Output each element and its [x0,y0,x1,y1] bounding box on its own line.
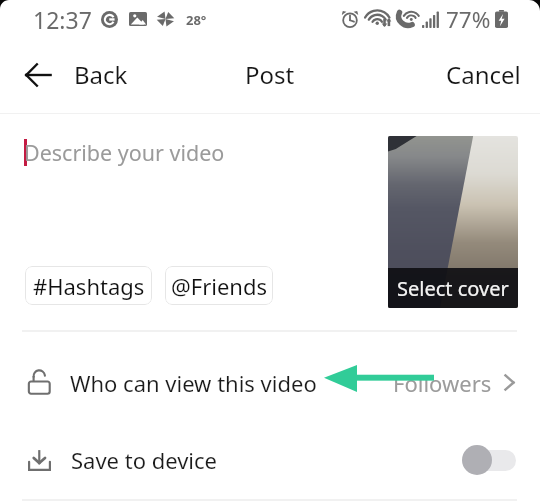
other: annotation arrow [324,365,434,392]
button[interactable]: #Hashtags [25,266,152,305]
staticText: 77% [446,4,491,35]
button[interactable]: Select cover [388,136,518,308]
staticText: Select cover [397,275,509,302]
staticText: @Friends [171,271,268,301]
button[interactable]: Cancel [410,40,540,109]
button[interactable]: Who can view this video [0,331,540,434]
staticText: Cancel [446,58,521,91]
button[interactable]: Save to device [0,428,540,492]
staticText: 28° [186,11,207,29]
staticText: 12:37 [33,4,92,35]
staticText: Save to device [71,445,218,475]
button[interactable]: @Friends [165,266,273,305]
button[interactable]: Save to device toggle [468,450,516,471]
button[interactable]: Back [0,40,142,109]
staticText: Followers [393,368,492,398]
staticText: #Hashtags [33,271,145,301]
staticText: Post [245,58,295,91]
staticText: Who can view this video [70,368,317,398]
staticText: Back [74,58,128,91]
staticText: Describe your video [24,138,225,167]
